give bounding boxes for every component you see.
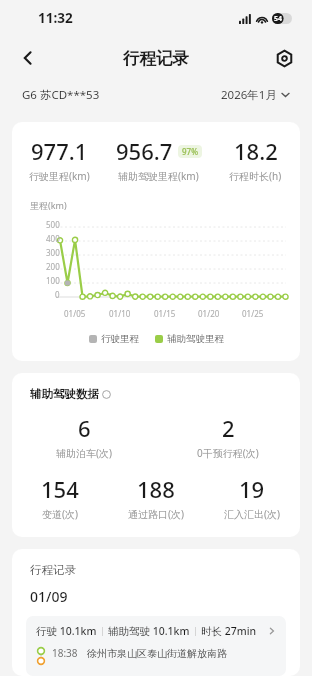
staticText: 400 [46,233,60,244]
staticText: 通过路口(次) [128,507,184,521]
staticText: 54 [274,14,283,24]
staticText: 18:38 [52,646,78,660]
staticText: 行驶里程(km) [29,169,90,183]
staticText: 18.2 [234,136,278,166]
staticText: 977.1 [31,136,88,166]
staticText: 行驶 10.1km [36,624,97,638]
staticText: G6 苏CD***53 [22,87,100,103]
staticText: 0干预行程(次) [197,446,259,460]
staticText: 行驶里程 [101,333,139,345]
staticText: 辅助驾驶数据 [30,387,99,401]
staticText: 500 [46,219,60,230]
staticText: 汇入汇出(次) [224,507,280,521]
staticText: 01/20 [198,308,220,319]
button[interactable]: 2026年1月 [221,87,290,103]
staticText: 97% [182,146,198,157]
staticText: 300 [46,247,60,258]
staticText: 2 [222,413,235,443]
staticText: 行程记录 [30,563,76,577]
staticText: 01/25 [242,308,264,319]
staticText: 01/09 [30,587,68,606]
staticText: 01/15 [154,308,176,319]
staticText: 辅助驾驶里程(km) [118,169,199,183]
staticText: 188 [137,474,175,504]
button[interactable]: Settings [264,38,304,78]
staticText: 辅助驾驶里程 [167,333,224,345]
staticText: 01/05 [64,308,86,319]
staticText: 0 [55,289,60,300]
staticText: 徐州市泉山区泰山街道解放南路 [87,647,227,660]
staticText: 里程(km) [30,199,67,211]
staticText: 6 [78,413,91,443]
staticText: 行程记录 [123,48,189,69]
button[interactable]: Back [8,38,48,78]
staticText: 200 [46,261,60,272]
staticText: 变道(次) [42,507,78,521]
staticText: 行程时长(h) [229,169,282,183]
button[interactable]: 行驶 10.1km [26,616,286,676]
staticText: 11:32 [38,9,73,27]
staticText: 100 [46,275,60,286]
staticText: 2026年1月 [221,87,277,103]
staticText: 辅助驾驶 10.1km [108,624,190,638]
staticText: 01/10 [109,308,131,319]
staticText: 辅助泊车(次) [56,446,112,460]
staticText: 19 [239,474,265,504]
staticText: 时长 27min [201,624,257,638]
staticText: 956.7 [116,136,173,166]
other: Info [102,390,111,399]
staticText: 154 [41,474,79,504]
